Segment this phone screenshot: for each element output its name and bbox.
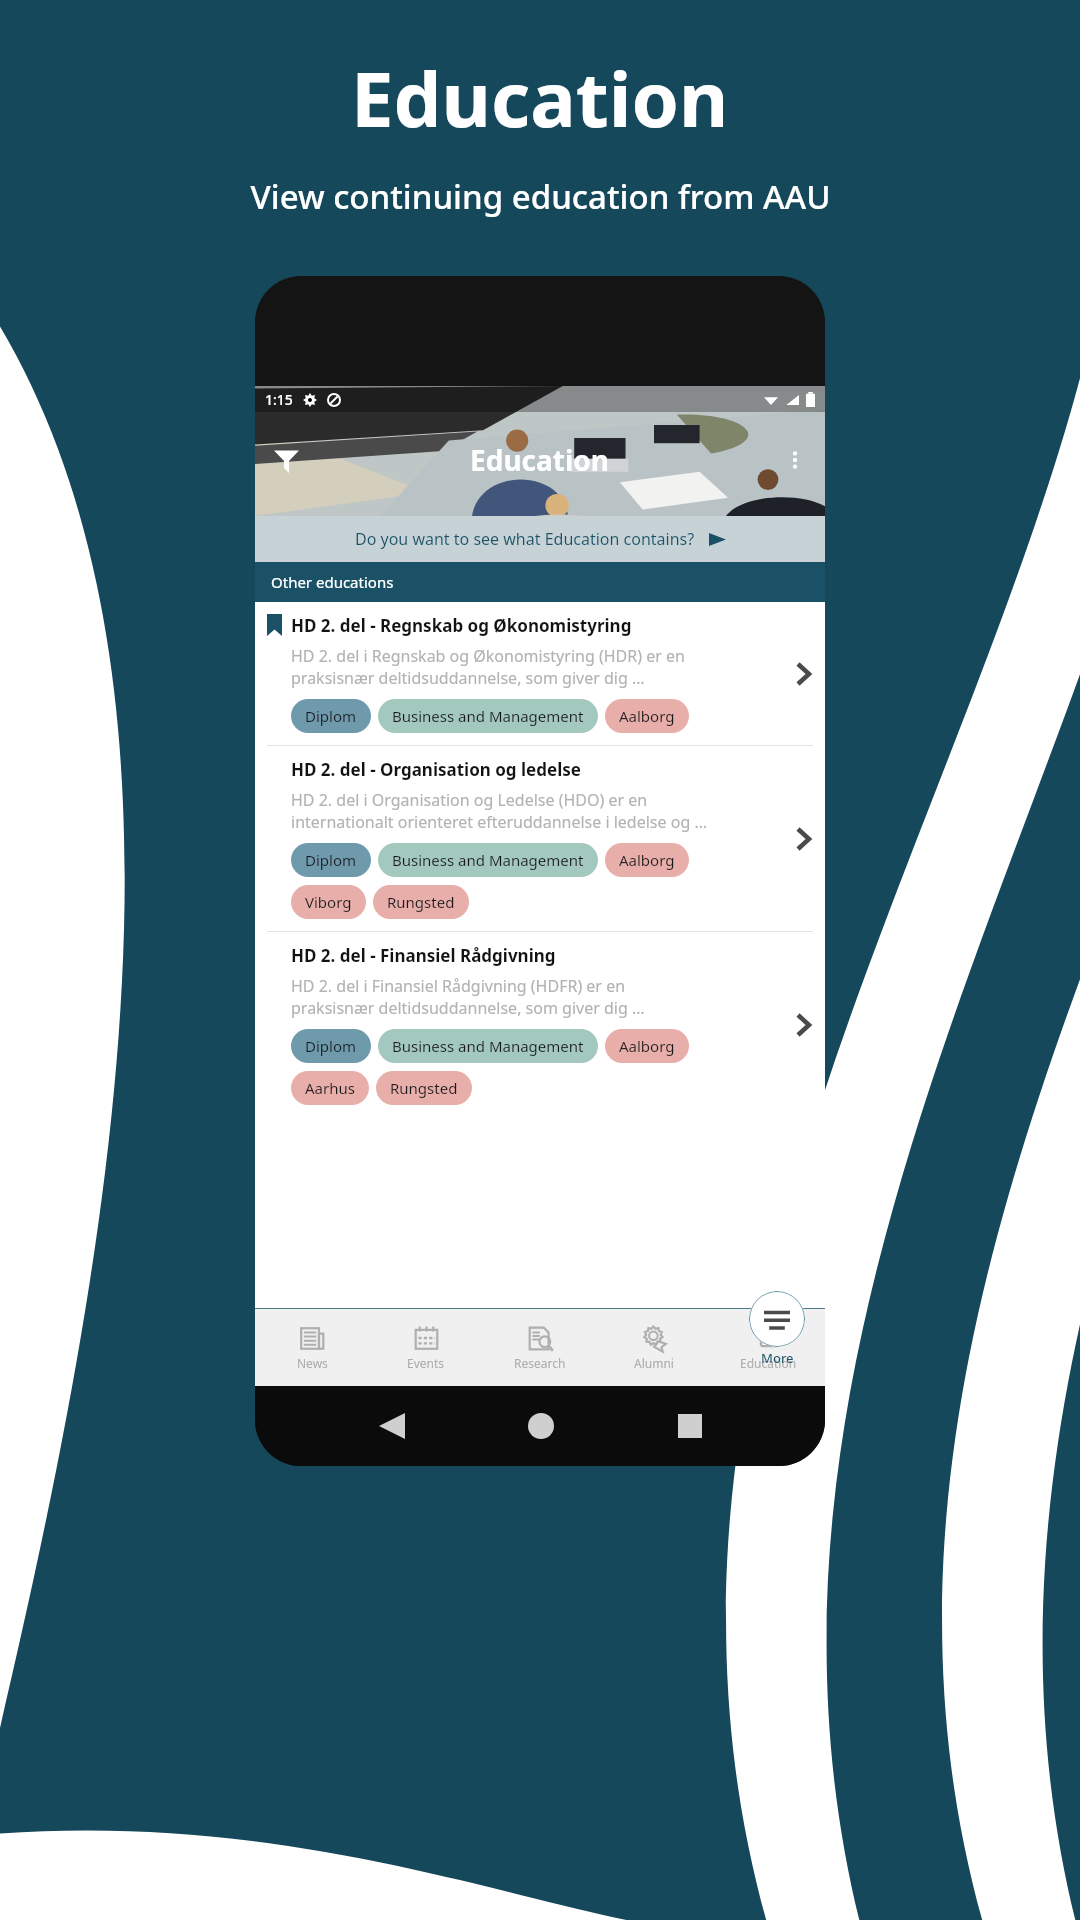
staticText: praksisnær deltidsuddannelse, som giver … <box>291 667 645 689</box>
staticText: HD 2. del i Finansiel Rådgivning (HDFR) … <box>291 975 626 997</box>
button[interactable]: Open <box>781 652 825 696</box>
staticText: HD 2. del i Organisation og Ledelse (HDO… <box>291 789 648 811</box>
staticText: Do you want to see what Education contai… <box>355 528 695 550</box>
staticText: praksisnær deltidsuddannelse, som giver … <box>291 997 645 1019</box>
staticText: Business and Management <box>392 706 584 726</box>
staticText: Aalborg <box>619 1036 675 1056</box>
button[interactable]: HD 2. del - Regnskab og Økonomistyring <box>255 602 825 745</box>
staticText: Diplom <box>305 1036 357 1056</box>
button[interactable]: Business and Management <box>378 843 598 877</box>
button[interactable]: Diplom <box>291 699 371 733</box>
button[interactable]: Diplom <box>291 843 371 877</box>
button[interactable]: HD 2. del - Organisation og ledelse <box>255 746 825 931</box>
staticText: Education <box>740 1355 797 1371</box>
staticText: Aarhus <box>305 1078 355 1098</box>
button[interactable]: Aalborg <box>605 699 689 733</box>
button[interactable]: Business and Management <box>378 1029 598 1063</box>
button[interactable]: Alumni <box>597 1309 711 1386</box>
button[interactable]: Business and Management <box>378 699 598 733</box>
button[interactable]: Events <box>369 1309 483 1386</box>
button[interactable]: Filter <box>263 437 309 483</box>
button[interactable]: Education <box>711 1309 825 1386</box>
button[interactable]: Open <box>781 1003 825 1047</box>
staticText: More <box>761 1349 794 1367</box>
button[interactable]: Research <box>483 1309 597 1386</box>
button[interactable]: Aalborg <box>605 843 689 877</box>
staticText: Events <box>407 1355 445 1371</box>
button[interactable]: More <box>749 1291 805 1367</box>
staticText: Diplom <box>305 706 357 726</box>
staticText: Education <box>470 441 610 479</box>
staticText: Alumni <box>634 1355 674 1371</box>
button[interactable]: Rungsted <box>373 885 469 919</box>
staticText: Diplom <box>305 850 357 870</box>
button[interactable]: Do you want to see what Education contai… <box>255 516 825 562</box>
staticText: HD 2. del - Regnskab og Økonomistyring <box>291 614 632 637</box>
button[interactable]: Diplom <box>291 1029 371 1063</box>
staticText: Education <box>351 46 729 150</box>
button[interactable]: More options <box>773 438 817 482</box>
button[interactable]: News <box>255 1309 369 1386</box>
staticText: internationalt orienteret efteruddannels… <box>291 811 708 833</box>
button[interactable]: Viborg <box>291 885 366 919</box>
button[interactable]: HD 2. del - Finansiel Rådgivning <box>255 932 825 1117</box>
button[interactable]: Aalborg <box>605 1029 689 1063</box>
button[interactable]: Rungsted <box>376 1071 472 1105</box>
staticText: View continuing education from AAU <box>250 174 831 219</box>
button[interactable]: Aarhus <box>291 1071 369 1105</box>
staticText: Business and Management <box>392 850 584 870</box>
staticText: 1:15 <box>265 390 293 409</box>
staticText: Viborg <box>305 892 352 912</box>
staticText: Rungsted <box>390 1078 458 1098</box>
staticText: Rungsted <box>387 892 455 912</box>
button[interactable]: Open <box>781 817 825 861</box>
staticText: News <box>297 1355 328 1371</box>
staticText: HD 2. del - Finansiel Rådgivning <box>291 944 556 967</box>
staticText: Aalborg <box>619 850 675 870</box>
staticText: HD 2. del i Regnskab og Økonomistyring (… <box>291 645 685 667</box>
staticText: Business and Management <box>392 1036 584 1056</box>
staticText: Other educations <box>271 572 394 592</box>
staticText: Aalborg <box>619 706 675 726</box>
staticText: HD 2. del - Organisation og ledelse <box>291 758 581 781</box>
staticText: Research <box>514 1355 566 1371</box>
